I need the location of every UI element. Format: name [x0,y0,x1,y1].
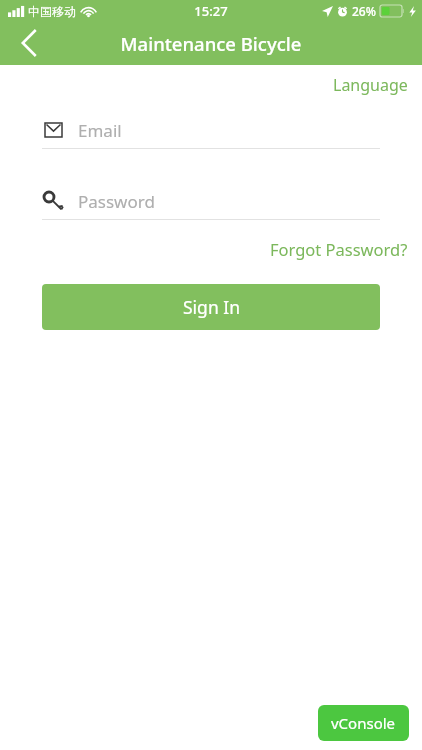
button[interactable]: Email [42,112,380,149]
button[interactable]: Password [42,183,380,220]
staticText: Forgot Password? [270,238,408,260]
button[interactable]: Back [8,22,52,64]
button[interactable]: Sign In [42,284,380,330]
button[interactable]: Language [327,72,414,98]
staticText: 中国移动 [28,4,76,19]
staticText: Maintenance Bicycle [0,31,422,56]
staticText: 26% [352,3,376,19]
staticText: Language [333,74,408,96]
staticText: Email [78,119,122,142]
staticText: Sign In [183,295,240,319]
staticText: Password [78,190,155,213]
staticText: vConsole [331,713,396,733]
button[interactable]: vConsole [318,705,409,741]
staticText: 15:27 [194,2,228,20]
button[interactable]: Forgot Password? [264,236,414,262]
